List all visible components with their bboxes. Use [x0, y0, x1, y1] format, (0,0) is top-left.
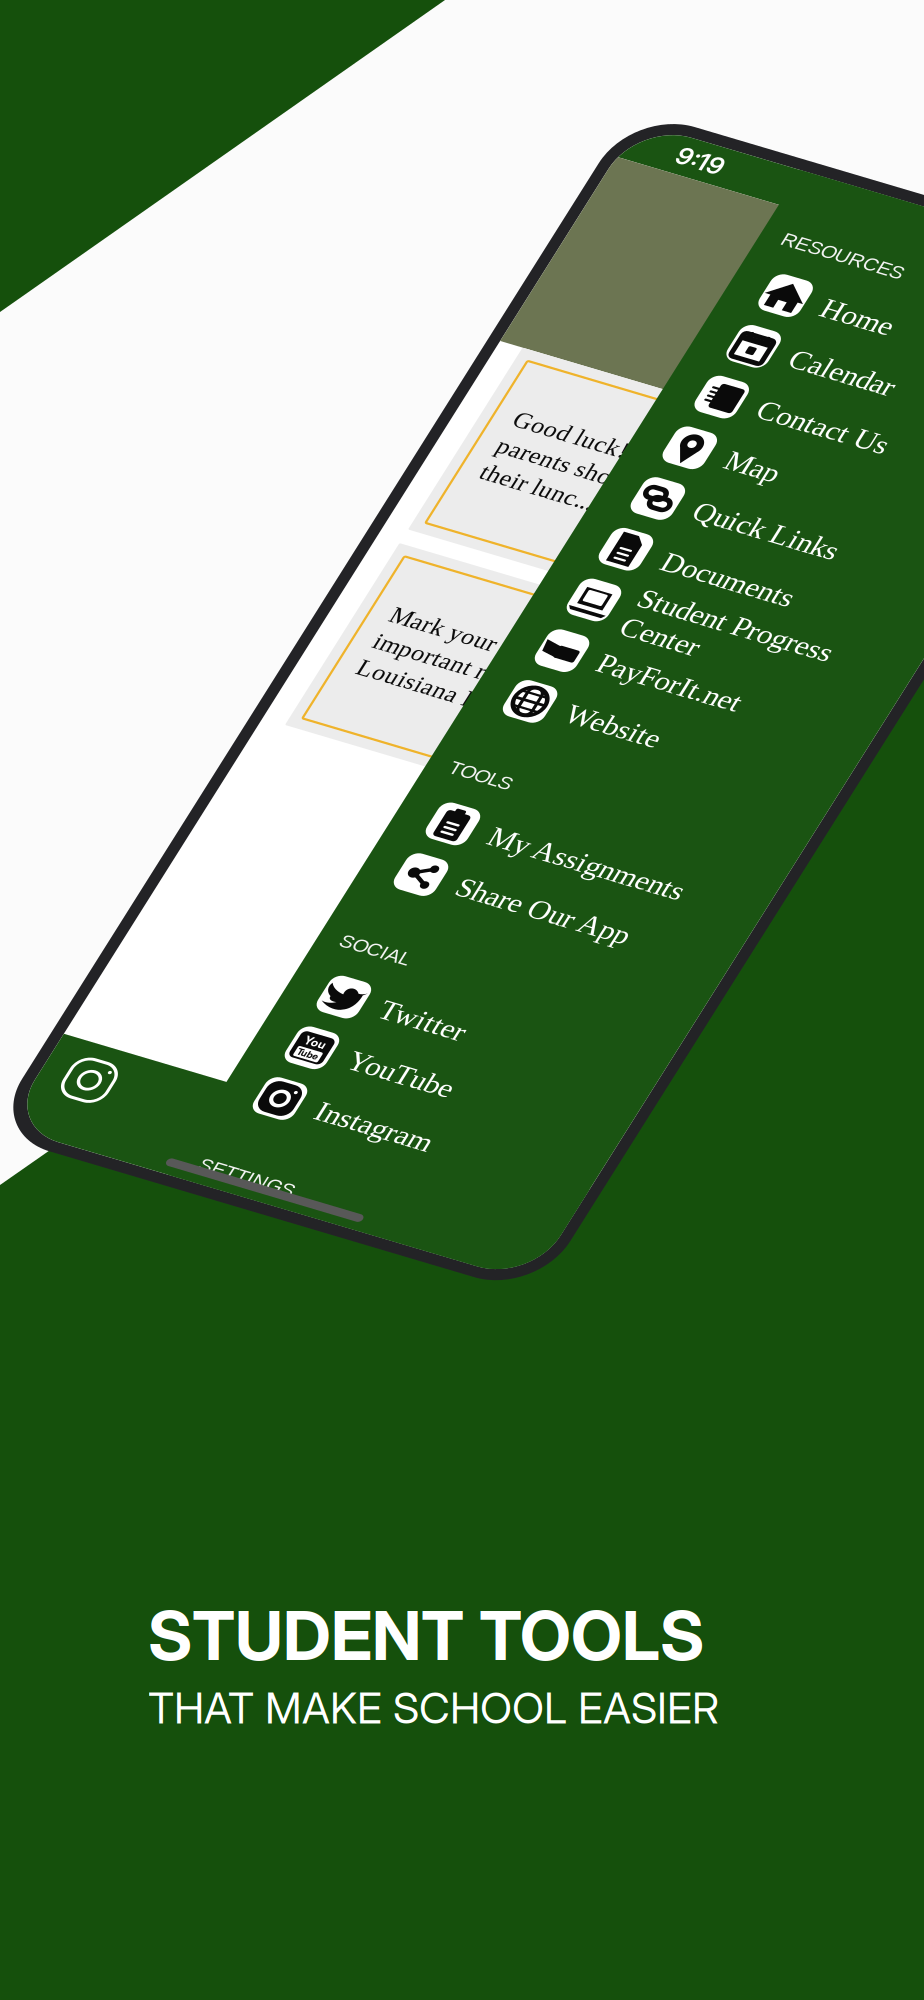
staticText: Documents	[819, 404, 912, 427]
button[interactable]: Calendar	[754, 231, 924, 272]
staticText: 9:19	[674, 125, 707, 146]
button[interactable]: Website	[754, 518, 924, 559]
staticText: RESOURCES	[769, 165, 855, 179]
staticText: important meeting for	[676, 518, 831, 537]
button[interactable]: Good luck! We love all the	[654, 299, 924, 446]
staticText: parents showing up with	[676, 360, 851, 379]
staticText: SWAMP!	[858, 244, 924, 274]
staticText: Website	[819, 527, 885, 550]
staticText: Map	[819, 322, 856, 345]
button[interactable]: Map	[754, 313, 924, 354]
button[interactable]: Quick Links	[754, 354, 924, 395]
staticText: SETTINGS	[769, 913, 836, 927]
button[interactable]: Share Our App	[754, 658, 924, 699]
button[interactable]: Mark your calendars for this	[654, 457, 924, 604]
button[interactable]: You	[754, 798, 924, 839]
button[interactable]: Contact Us	[754, 272, 924, 313]
staticText: Calendar	[819, 240, 893, 263]
button[interactable]: My Assignments	[754, 617, 924, 658]
button[interactable]: Documents	[754, 395, 924, 436]
staticText: STUDENT TOOLS	[148, 1594, 704, 1676]
button[interactable]: Student Progress Center	[754, 436, 924, 477]
staticText: TOOLS	[769, 592, 813, 606]
button[interactable]: Instagram	[754, 839, 924, 880]
staticText: Louisiana Institu...	[676, 539, 809, 559]
staticText: Student Progress Center	[819, 434, 924, 479]
staticText: THAT MAKE SCHOOL EASIER	[148, 1682, 719, 1734]
staticText: YouTube	[819, 807, 893, 830]
staticText: Twitter	[819, 766, 879, 789]
staticText: My Assignments	[819, 626, 924, 649]
staticText: their lunc...	[676, 381, 756, 401]
staticText: Mark your calendars for this	[676, 497, 878, 516]
button[interactable]: Twitter	[754, 757, 924, 798]
staticText: WELCOME	[833, 174, 924, 205]
button[interactable]: PayForIt.net	[754, 477, 924, 518]
button[interactable]: Home	[754, 190, 924, 231]
staticText: Good luck! We love all the	[676, 339, 867, 358]
staticText: Share Our App	[819, 667, 924, 690]
staticText: Quick Links	[819, 363, 921, 386]
staticText: Contact Us	[819, 281, 911, 304]
